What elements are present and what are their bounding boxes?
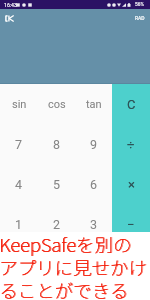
- button[interactable]: ÷: [112, 124, 150, 164]
- staticText: KeepSafeを別のアプリに見せかけることができる: [0, 231, 149, 299]
- staticText: ÷: [127, 137, 135, 152]
- button[interactable]: tan: [75, 84, 112, 124]
- button[interactable]: 7: [0, 124, 38, 164]
- button[interactable]: 8: [38, 124, 75, 164]
- button[interactable]: ×: [112, 164, 150, 204]
- button[interactable]: cos: [38, 84, 75, 124]
- staticText: KeepSafeを別のアプリに見せかけることができる: [0, 231, 149, 299]
- staticText: KeepSafeを別のアプリに見せかけることができる: [0, 231, 150, 299]
- button[interactable]: RAD: [135, 15, 145, 21]
- button[interactable]: 3: [75, 204, 112, 244]
- staticText: 4: [15, 177, 23, 192]
- staticText: 7: [15, 137, 23, 152]
- staticText: cos: [48, 98, 66, 111]
- staticText: C: [127, 97, 136, 112]
- staticText: 5: [53, 177, 61, 192]
- staticText: 9: [90, 137, 98, 152]
- button[interactable]: 1: [0, 204, 38, 244]
- button[interactable]: 5: [38, 164, 75, 204]
- staticText: tan: [86, 98, 102, 111]
- staticText: C: [127, 97, 136, 112]
- button[interactable]: 6: [75, 164, 112, 204]
- button[interactable]: −: [112, 204, 150, 244]
- staticText: −: [127, 217, 135, 232]
- button[interactable]: 2: [38, 204, 75, 244]
- staticText: 3: [90, 217, 98, 232]
- button[interactable]: C: [112, 84, 150, 124]
- staticText: 1: [15, 217, 23, 232]
- button[interactable]: sin: [0, 84, 38, 124]
- button[interactable]: 9: [75, 124, 112, 164]
- staticText: 6: [90, 177, 98, 192]
- staticText: −: [127, 217, 135, 232]
- staticText: 2: [53, 217, 61, 232]
- staticText: 8: [53, 137, 61, 152]
- staticText: sin: [12, 98, 27, 111]
- staticText: ×: [128, 177, 135, 192]
- staticText: 56%: [135, 2, 144, 8]
- staticText: ×: [128, 177, 135, 192]
- staticText: ÷: [127, 137, 135, 152]
- staticText: 16:43: [4, 2, 17, 8]
- staticText: KeepSafeを別のアプリに見せかけることができる: [0, 231, 149, 299]
- button[interactable]: 4: [0, 164, 38, 204]
- button[interactable]: KeepSafe Calculator: [2, 11, 17, 26]
